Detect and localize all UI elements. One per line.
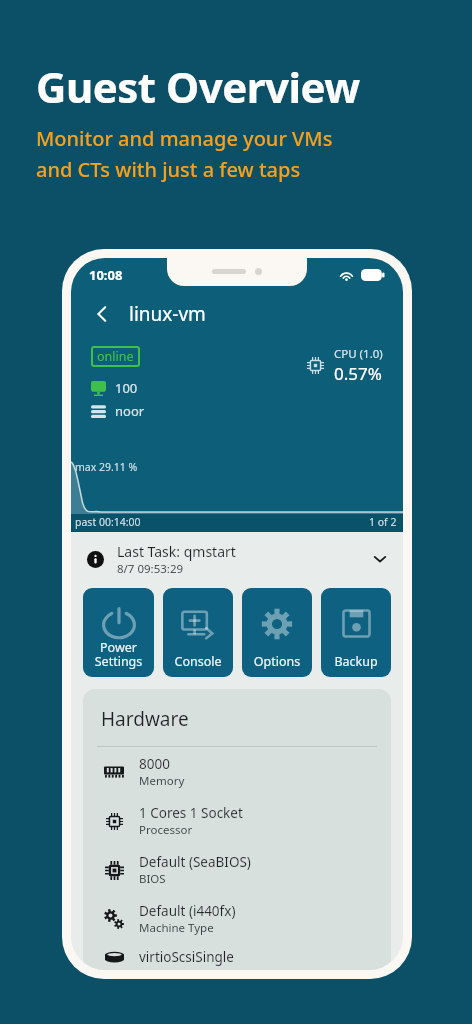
button[interactable]: Back	[85, 297, 119, 331]
staticText: 1 Cores 1 Socket	[139, 804, 243, 822]
button[interactable]: 1 Cores 1 Socket	[83, 796, 391, 845]
staticText: CPU (1.0)	[334, 346, 383, 362]
staticText: Default (SeaBIOS)	[139, 853, 251, 871]
button[interactable]: Default (i440fx)	[83, 894, 391, 943]
staticText: BIOS	[139, 871, 166, 887]
staticText: Hardware	[101, 706, 189, 732]
button[interactable]: 8000	[83, 747, 391, 796]
staticText: Power Settings	[83, 639, 154, 670]
button[interactable]: Options	[242, 588, 312, 677]
button[interactable]: Last Task: qmstart	[71, 532, 403, 586]
button[interactable]: Console	[163, 588, 233, 677]
staticText: 0.57%	[334, 362, 382, 385]
staticText: past 00:14:00	[75, 515, 141, 529]
staticText: Backup	[321, 653, 391, 670]
staticText: 8/7 09:53:29	[117, 561, 184, 577]
staticText: Console	[163, 653, 233, 670]
staticText: Guest Overview	[36, 58, 360, 115]
staticText: linux-vm	[129, 301, 206, 327]
staticText: max 29.11 %	[75, 460, 138, 474]
button[interactable]: Default (SeaBIOS)	[83, 845, 391, 894]
staticText: Memory	[139, 773, 185, 789]
staticText: Processor	[139, 822, 193, 838]
staticText: 1 of 2	[369, 515, 397, 529]
staticText: online	[97, 348, 134, 365]
button[interactable]: Power Settings	[83, 588, 154, 677]
staticText: Options	[242, 653, 312, 670]
staticText: and CTs with just a few taps	[36, 156, 301, 183]
staticText: virtioScsiSingle	[139, 948, 234, 966]
staticText: Last Task: qmstart	[117, 542, 236, 561]
staticText: 10:08	[89, 266, 123, 284]
staticText: Default (i440fx)	[139, 902, 236, 920]
button[interactable]: virtioScsiSingle	[83, 943, 391, 970]
staticText: 100	[115, 379, 138, 397]
staticText: Monitor and manage your VMs	[36, 125, 333, 152]
button[interactable]: Backup	[321, 588, 391, 677]
staticText: noor	[115, 402, 145, 420]
staticText: 8000	[139, 755, 170, 773]
staticText: Machine Type	[139, 920, 214, 936]
